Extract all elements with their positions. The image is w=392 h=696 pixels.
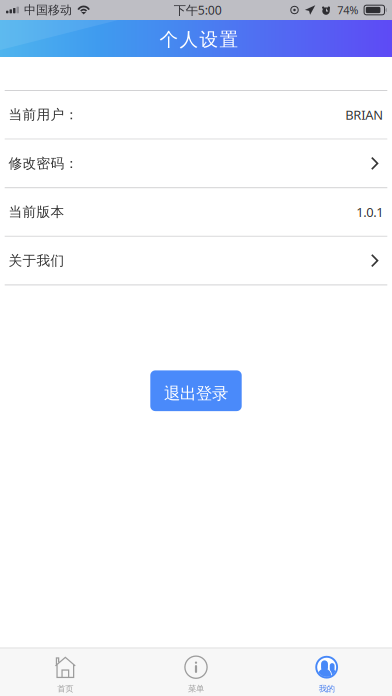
- staticText: 修改密码：: [9, 155, 79, 172]
- staticText: 中国移动: [24, 2, 72, 17]
- staticText: 首页: [57, 683, 73, 694]
- staticText: 个人设置: [159, 28, 238, 51]
- staticText: 关于我们: [9, 252, 65, 269]
- button[interactable]: 修改密码：: [0, 140, 392, 187]
- button[interactable]: 首页: [0, 648, 131, 696]
- staticText: 我的: [319, 683, 335, 694]
- staticText: 当前用户：: [9, 106, 79, 123]
- button[interactable]: 我的: [261, 648, 392, 696]
- staticText: 退出登录: [164, 383, 228, 404]
- staticText: 74%: [337, 2, 358, 17]
- button[interactable]: 菜单: [131, 648, 261, 696]
- staticText: BRIAN: [345, 106, 383, 124]
- staticText: 下午5:00: [174, 2, 222, 18]
- button[interactable]: 退出登录: [150, 370, 242, 411]
- staticText: 当前版本: [9, 203, 65, 221]
- button[interactable]: 关于我们: [0, 237, 392, 284]
- staticText: 1.0.1: [356, 203, 383, 221]
- staticText: 菜单: [188, 683, 204, 694]
